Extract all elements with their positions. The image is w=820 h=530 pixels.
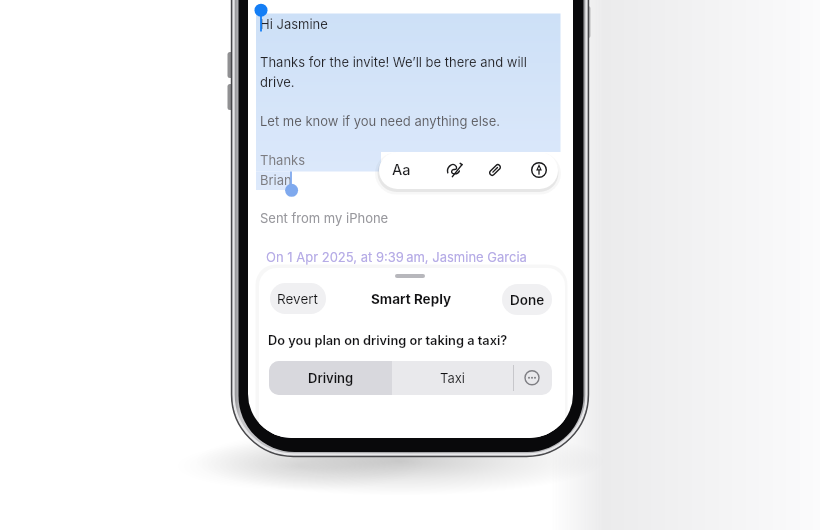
- staticText: Done: [510, 292, 545, 308]
- button[interactable]: Taxi: [392, 361, 513, 395]
- staticText: Do you plan on driving or taking a taxi?: [268, 333, 508, 348]
- button[interactable]: Revert: [270, 283, 326, 314]
- button[interactable]: [477, 152, 513, 188]
- staticText: Brian: [260, 172, 292, 188]
- staticText: Taxi: [440, 370, 465, 386]
- button[interactable]: [513, 361, 552, 395]
- staticText: drive.: [260, 74, 295, 90]
- staticText: Smart Reply: [371, 291, 452, 307]
- staticText: Driving: [308, 370, 354, 386]
- button[interactable]: [437, 152, 473, 188]
- staticText: Thanks for the invite! We’ll be there an…: [260, 54, 527, 70]
- staticText: Thanks: [260, 152, 306, 168]
- button[interactable]: Aa: [387, 152, 415, 188]
- staticText: Sent from my iPhone: [260, 210, 389, 226]
- button[interactable]: Done: [502, 284, 552, 315]
- staticText: Revert: [277, 291, 319, 307]
- staticText: On 1 Apr 2025, at 9:39 am, Jasmine Garci…: [266, 249, 527, 265]
- button[interactable]: Driving: [269, 361, 392, 395]
- staticText: Hi Jasmine: [260, 16, 328, 32]
- staticText: Let me know if you need anything else.: [260, 113, 500, 129]
- staticText: Aa: [392, 161, 411, 179]
- button[interactable]: [521, 152, 557, 188]
